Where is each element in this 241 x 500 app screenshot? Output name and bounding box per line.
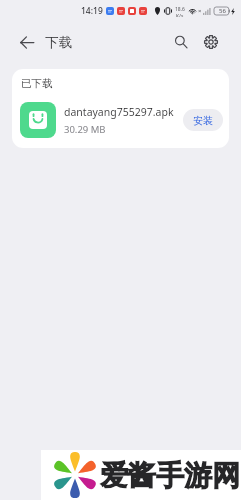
staticText: 56 <box>219 7 226 15</box>
button[interactable]: dantayang755297.apk <box>12 96 229 144</box>
button[interactable]: Search <box>168 29 194 55</box>
button[interactable]: Settings <box>198 29 224 55</box>
staticText: 下载 <box>45 34 72 51</box>
staticText: 18.6 <box>175 6 185 13</box>
staticText: 已下载 <box>21 77 53 90</box>
staticText: K/s <box>176 13 184 17</box>
button[interactable]: Back <box>15 30 39 54</box>
staticText: 14:19 <box>81 5 103 17</box>
staticText: 爱酱手游网 <box>100 458 240 493</box>
staticText: 30.29 MB <box>64 123 106 136</box>
button[interactable]: 安装 <box>183 109 223 131</box>
staticText: dantayang755297.apk <box>64 105 174 119</box>
staticText: × <box>198 7 202 15</box>
staticText: 安装 <box>193 114 213 127</box>
